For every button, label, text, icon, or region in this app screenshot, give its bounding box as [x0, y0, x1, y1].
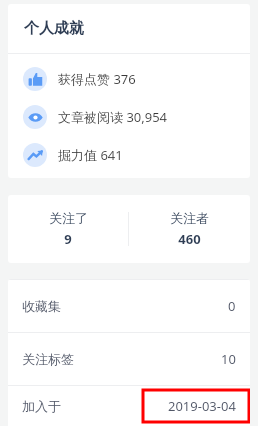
button[interactable]: 文章被阅读 30,954 [8, 98, 250, 136]
button[interactable]: 加入于 [8, 386, 250, 426]
button[interactable]: 关注标签 [8, 333, 250, 385]
staticText: 个人成就 [24, 19, 84, 38]
staticText: 获得点赞 376 [58, 70, 136, 88]
staticText: 460 [178, 230, 201, 248]
staticText: 关注标签 [22, 351, 74, 367]
staticText: 2019-03-04 [168, 397, 236, 415]
button[interactable]: 获得点赞 376 [8, 60, 250, 98]
button[interactable]: 关注了 [8, 195, 128, 263]
button[interactable]: 关注者 [129, 195, 250, 263]
button[interactable]: 收藏集 [8, 280, 250, 332]
staticText: 收藏集 [22, 298, 61, 314]
staticText: 加入于 [22, 398, 61, 414]
staticText: 9 [64, 230, 72, 248]
button[interactable]: 掘力值 641 [8, 136, 250, 174]
staticText: 掘力值 641 [58, 146, 123, 164]
staticText: 关注了 [49, 210, 88, 226]
staticText: 0 [228, 297, 236, 315]
staticText: 10 [221, 350, 236, 368]
staticText: 文章被阅读 30,954 [58, 108, 168, 126]
staticText: 关注者 [170, 210, 209, 226]
